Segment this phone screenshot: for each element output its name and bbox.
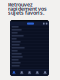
button[interactable] [10,59,49,62]
button[interactable]: Onglet 5 [41,69,49,76]
button[interactable]: Onglet 4 [33,69,41,76]
button[interactable] [10,50,49,53]
staticText: sujets favoris. [8,9,44,16]
staticText: Retrouvez [8,1,33,8]
button[interactable] [10,32,49,35]
button[interactable] [10,38,49,41]
button[interactable] [10,26,49,29]
button[interactable]: Onglet 1 [10,69,18,76]
button[interactable] [10,62,49,65]
button[interactable] [10,44,49,47]
button[interactable]: Suivre [27,22,34,25]
button[interactable]: Onglet 2 [18,69,26,76]
button[interactable] [10,29,49,32]
button[interactable] [10,65,49,68]
button[interactable] [10,47,49,50]
button[interactable] [10,56,49,59]
button[interactable] [10,41,49,44]
button[interactable]: Recherche [43,23,45,24]
staticText: rapidement vos [8,5,47,12]
button[interactable] [10,35,49,38]
button[interactable]: Onglet 3 [26,69,33,76]
button[interactable] [10,53,49,56]
